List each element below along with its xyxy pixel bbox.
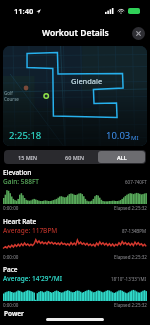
staticText: Average: 117BPM [3,226,58,235]
button[interactable]: Pace [3,265,147,308]
button[interactable]: Close [132,27,145,40]
staticText: 87-134BPM [122,228,147,234]
staticText: 0:00:00 [3,205,19,211]
staticText: 18'10"-13'33"/MI [111,276,147,282]
staticText: 11:40 [14,6,34,16]
button[interactable]: 15 MIN [5,151,51,163]
staticText: ALL [117,154,127,161]
staticText: 0:00:00 [3,302,19,308]
staticText: Gain: 588FT [3,177,39,186]
button[interactable]: Elevation [3,168,147,211]
button[interactable]: 60 MIN [51,151,98,163]
staticText: 2:25:18 [9,129,42,142]
button[interactable]: ALL [98,151,145,163]
button[interactable]: Glendale [3,46,147,146]
staticText: MI [131,134,139,142]
staticText: 0:00:00 [3,254,19,260]
button[interactable]: Heart Rate [3,217,147,260]
staticText: 60 MIN [65,154,85,161]
staticText: Power [4,309,24,318]
staticText: Elapsed 2:25:32 [114,205,147,211]
staticText: Elapsed 2:25:32 [114,254,147,260]
staticText: Average: 14'29"/MI [3,274,62,283]
staticText: Workout Details [42,27,109,39]
staticText: Golf Course [4,90,19,102]
staticText: Elapsed 2:25:32 [114,302,147,308]
staticText: Heart Rate [3,217,37,226]
staticText: Elevation [3,168,32,177]
staticText: 10.03 [106,129,131,142]
staticText: 15 MIN [18,154,38,161]
staticText: Pace [3,265,18,274]
staticText: Glendale [71,76,103,86]
staticText: 607-740FT [125,179,147,185]
